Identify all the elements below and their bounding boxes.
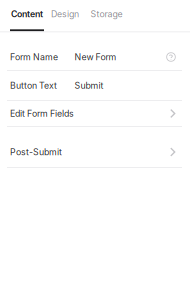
staticText: New Form: [74, 52, 116, 62]
button[interactable]: Design: [51, 9, 79, 31]
staticText: Submit: [74, 80, 103, 91]
staticText: Post-Submit: [10, 147, 62, 157]
button[interactable]: Form Name: [0, 44, 190, 71]
staticText: Design: [51, 9, 79, 19]
button[interactable]: Button Text: [0, 71, 190, 101]
button[interactable]: Storage: [90, 9, 122, 31]
staticText: Button Text: [10, 80, 57, 91]
button[interactable]: Content: [10, 9, 44, 31]
button[interactable]: Post-Submit: [0, 137, 190, 168]
staticText: Form Name: [10, 52, 58, 62]
button[interactable]: Edit Form Fields: [0, 101, 190, 127]
staticText: Edit Form Fields: [10, 108, 74, 119]
staticText: Content: [11, 9, 43, 19]
staticText: Storage: [90, 9, 122, 19]
